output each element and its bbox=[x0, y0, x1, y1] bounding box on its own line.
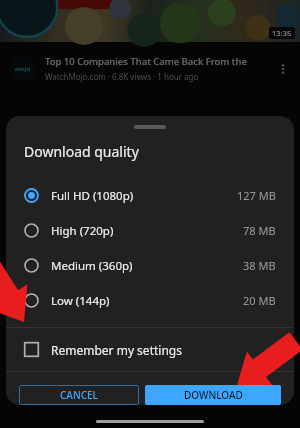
button[interactable]: Remember my settings bbox=[6, 328, 294, 371]
staticText: Download quality bbox=[24, 142, 139, 161]
button[interactable]: mojo bbox=[0, 42, 300, 95]
button[interactable]: CANCEL bbox=[19, 385, 139, 405]
staticText: Medium (360p) bbox=[51, 258, 133, 274]
staticText: mojo bbox=[15, 65, 31, 73]
staticText: 13:35 bbox=[272, 28, 292, 38]
staticText: Low (144p) bbox=[51, 293, 110, 309]
button[interactable]: Full HD (1080p) bbox=[6, 178, 294, 213]
staticText: Remember my settings bbox=[51, 342, 182, 358]
staticText: 38 MB bbox=[243, 258, 276, 273]
staticText: DOWNLOAD bbox=[184, 388, 243, 402]
staticText: Top 10 Companies That Came Back From the… bbox=[45, 55, 268, 68]
staticText: Full HD (1080p) bbox=[51, 188, 134, 204]
button[interactable]: High (720p) bbox=[6, 213, 294, 248]
staticText: WatchMojo.com · 6.8K views · 1 hour ago bbox=[45, 71, 199, 82]
button[interactable]: DOWNLOAD bbox=[145, 385, 281, 405]
staticText: CANCEL bbox=[60, 388, 98, 402]
staticText: 20 MB bbox=[243, 293, 276, 308]
staticText: 127 MB bbox=[237, 188, 276, 203]
staticText: 78 MB bbox=[243, 223, 276, 238]
button[interactable]: Medium (360p) bbox=[6, 248, 294, 283]
staticText: High (720p) bbox=[51, 223, 114, 239]
button[interactable]: More options bbox=[272, 58, 294, 80]
button[interactable]: Low (144p) bbox=[6, 283, 294, 318]
